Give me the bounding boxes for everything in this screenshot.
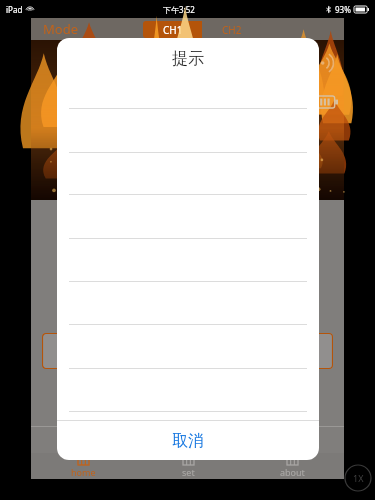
button[interactable]: 取消 xyxy=(57,421,319,460)
button[interactable]: home xyxy=(31,453,136,479)
staticText: CH2 xyxy=(222,23,242,37)
button[interactable]: set xyxy=(136,453,240,479)
button[interactable]: Zoom 1X xyxy=(344,464,372,492)
staticText: 取消 xyxy=(172,431,204,451)
staticText: 1X xyxy=(353,472,364,484)
staticText: about xyxy=(280,466,305,478)
staticText: Mode xyxy=(43,20,78,38)
staticText: iPad xyxy=(6,4,23,15)
button[interactable]: CH1 xyxy=(143,21,202,38)
staticText: 提示 xyxy=(172,49,204,69)
staticText: set xyxy=(182,466,195,478)
staticText: home xyxy=(71,466,96,478)
staticText: 下午3:52 xyxy=(163,4,195,15)
staticText: 93% xyxy=(335,4,351,15)
button[interactable]: about xyxy=(240,453,344,479)
button[interactable]: CH2 xyxy=(202,21,261,38)
staticText: CH1 xyxy=(163,23,183,37)
button[interactable] xyxy=(42,333,333,369)
